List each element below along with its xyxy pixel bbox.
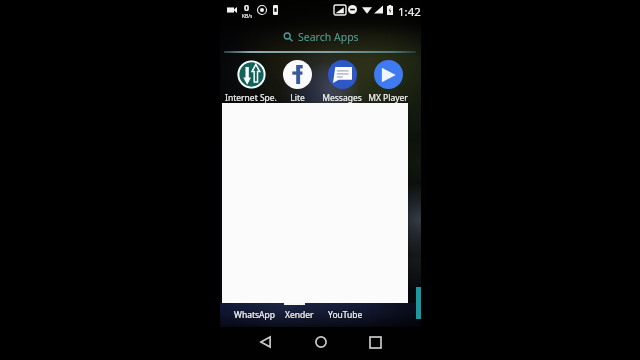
staticText: Lite — [290, 92, 305, 103]
button[interactable]: Back — [252, 329, 278, 355]
button[interactable]: Home — [308, 329, 334, 355]
button[interactable]: Internet Spe. — [225, 53, 277, 103]
button[interactable]: Recent apps — [362, 329, 388, 355]
staticText: 0 — [244, 1, 250, 13]
staticText: Search Apps — [298, 30, 359, 44]
staticText: Xender — [285, 309, 314, 321]
button[interactable]: Search Apps — [220, 24, 421, 50]
staticText: KB/s — [242, 13, 252, 20]
staticText: MX Player — [368, 92, 408, 103]
button[interactable]: Xender — [285, 303, 314, 327]
button[interactable]: WhatsApp — [234, 303, 275, 327]
staticText: YouTube — [328, 309, 363, 321]
button[interactable]: Messages — [316, 53, 368, 103]
button[interactable]: MX Player — [362, 53, 414, 103]
button[interactable]: Lite — [271, 53, 323, 103]
button[interactable]: YouTube — [328, 303, 363, 327]
staticText: Messages — [322, 92, 362, 103]
staticText: 1:42 — [398, 4, 421, 20]
staticText: WhatsApp — [234, 309, 275, 321]
staticText: Internet Spe. — [225, 92, 277, 103]
